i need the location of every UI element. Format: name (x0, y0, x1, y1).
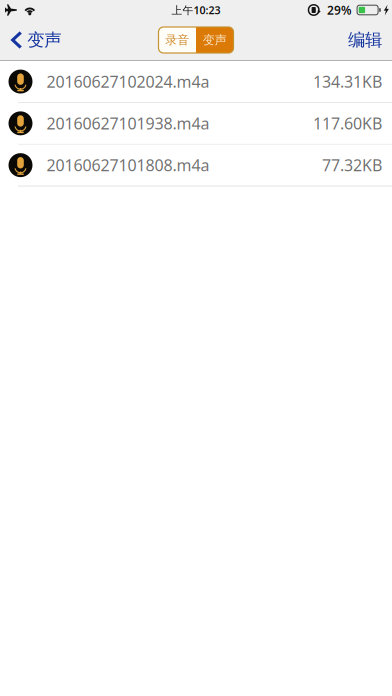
staticText: 上午10:23 (171, 3, 220, 17)
staticText: 录音 (165, 33, 189, 47)
staticText: 117.60KB (313, 113, 382, 134)
staticText: 29% (327, 2, 352, 18)
staticText: 编辑 (348, 29, 382, 51)
staticText: 20160627101808.m4a (46, 154, 209, 176)
staticText: 20160627102024.m4a (46, 71, 209, 92)
button[interactable]: 录音 (158, 27, 196, 53)
staticText: 变声 (203, 33, 227, 47)
staticText: 变声 (27, 29, 61, 51)
button[interactable]: 变声 (196, 27, 233, 53)
button[interactable]: 20160627101938.m4a (0, 103, 392, 145)
staticText: 77.32KB (322, 154, 382, 176)
button[interactable]: 20160627102024.m4a (0, 61, 392, 103)
button[interactable]: 变声 (0, 20, 69, 59)
staticText: 134.31KB (313, 71, 382, 92)
staticText: 20160627101938.m4a (46, 113, 209, 134)
button[interactable]: 编辑 (338, 20, 392, 59)
button[interactable]: 20160627101808.m4a (0, 145, 392, 186)
